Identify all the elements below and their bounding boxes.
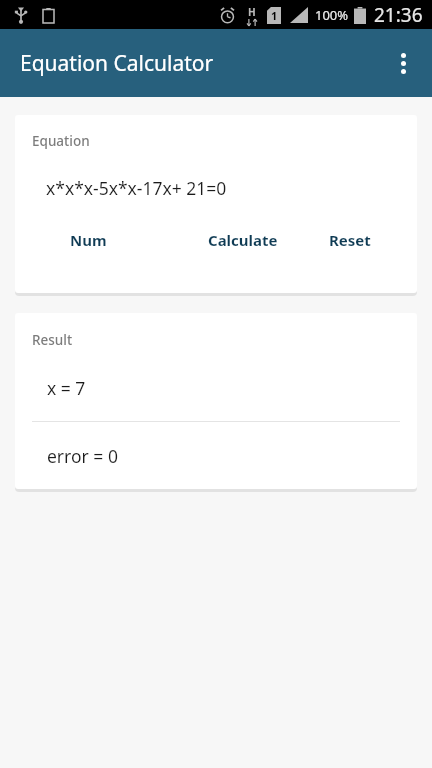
staticText: H (248, 5, 256, 19)
staticText: Equation (32, 132, 90, 150)
staticText: 21:36 (374, 2, 423, 28)
staticText: Result (32, 331, 73, 349)
staticText: error = 0 (47, 444, 118, 468)
staticText: x*x*x-5x*x-17x+ 21=0 (46, 176, 227, 200)
staticText: Reset (329, 230, 371, 250)
staticText: x = 7 (47, 376, 86, 400)
staticText: 1 (271, 8, 278, 23)
staticText: Equation Calculator (20, 49, 214, 78)
staticText: Calculate (208, 230, 278, 250)
button[interactable]: Calculate (205, 226, 281, 254)
button[interactable]: Num (67, 226, 110, 254)
button[interactable]: Reset (326, 226, 374, 254)
staticText: Num (70, 230, 107, 250)
staticText: 100% (315, 6, 349, 24)
button[interactable]: More options (379, 39, 427, 87)
